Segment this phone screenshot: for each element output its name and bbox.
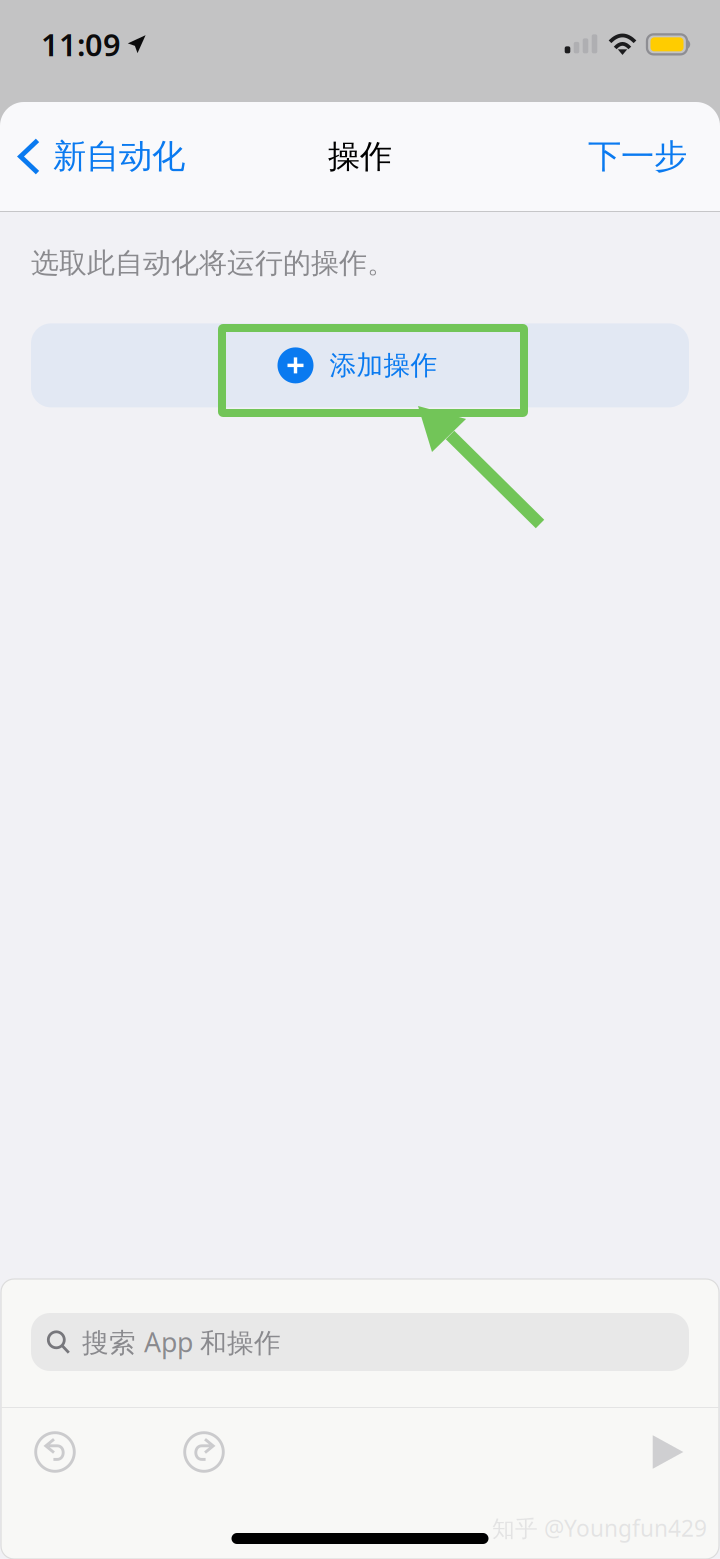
- button[interactable]: 运行: [643, 1421, 693, 1483]
- staticText: 选取此自动化将运行的操作。: [31, 246, 395, 280]
- staticText: 知乎 @Youngfun429: [492, 1513, 707, 1543]
- staticText: 下一步: [588, 136, 687, 177]
- button[interactable]: 撤销: [26, 1420, 84, 1484]
- button[interactable]: 重做: [175, 1420, 233, 1484]
- button[interactable]: 搜索 App 和操作: [31, 1313, 689, 1371]
- staticText: 搜索 App 和操作: [82, 1324, 281, 1360]
- staticText: 新自动化: [53, 136, 185, 177]
- staticText: 添加操作: [329, 349, 437, 382]
- staticText: 操作: [328, 137, 392, 176]
- staticText: 11:09: [41, 24, 121, 65]
- button[interactable]: 添加操作: [31, 323, 689, 407]
- button[interactable]: 下一步: [574, 118, 720, 195]
- button[interactable]: 新自动化: [0, 118, 199, 195]
